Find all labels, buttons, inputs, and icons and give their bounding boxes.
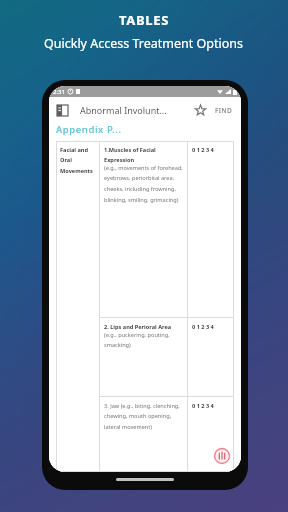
- staticText: (e.g., movements of forehead, eyebrows, …: [104, 164, 183, 204]
- staticText: FIND: [215, 106, 233, 115]
- staticText: 2:31: [53, 88, 65, 96]
- staticText: Quickly Access Treatment Options: [44, 35, 244, 52]
- staticText: (e.g., puckering, pouting, smacking): [104, 331, 183, 349]
- staticText: Appendix P...: [56, 123, 122, 136]
- staticText: Abnormal Involunt...: [80, 104, 167, 116]
- staticText: Facial and Oral Movements: [60, 146, 96, 175]
- staticText: 0 1 2 3 4: [192, 146, 214, 154]
- button[interactable]: FIND: [213, 102, 235, 119]
- staticText: 0 1 2 3 4: [192, 402, 214, 410]
- button[interactable]: Bookmark: [193, 103, 208, 118]
- staticText: 0 1 2 3 4: [192, 323, 214, 331]
- staticText: 1.Muscles of Facial Expression: [104, 146, 183, 164]
- button[interactable]: Assessment tools: [213, 447, 231, 465]
- staticText: 3. Jaw (e.g., biting, clenching, chewing…: [104, 402, 183, 431]
- staticText: TABLES: [119, 11, 170, 29]
- button[interactable]: Table of contents: [55, 103, 69, 117]
- staticText: 2. Lips and Perioral Area: [104, 323, 172, 331]
